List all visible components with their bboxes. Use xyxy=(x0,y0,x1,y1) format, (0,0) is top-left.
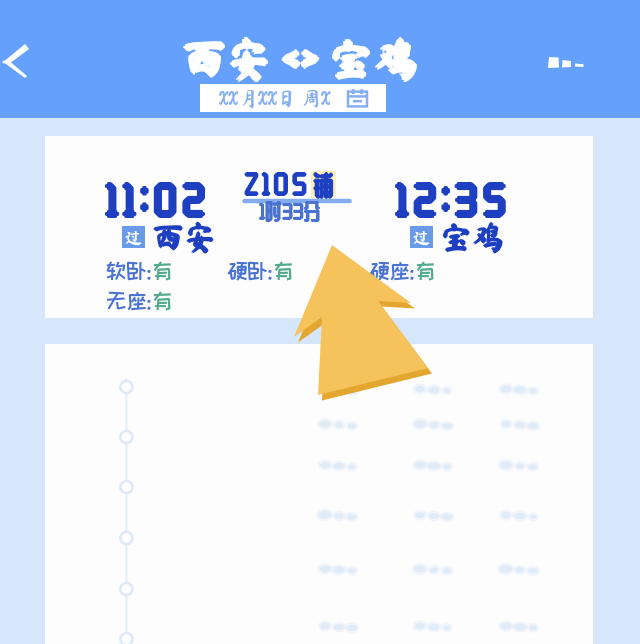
staticText: 西安 xyxy=(151,221,216,253)
staticText: 铺 xyxy=(314,171,335,198)
staticText: 西安 <> 宝鸡 xyxy=(182,36,419,80)
staticText: 铺 xyxy=(312,171,333,198)
staticText: 宝鸡 xyxy=(440,221,505,253)
staticText: 12:35 xyxy=(396,174,512,220)
staticText: 硬座: xyxy=(369,260,415,282)
staticText: 12:35 xyxy=(394,176,510,222)
staticText: 西安 xyxy=(153,221,218,253)
staticText: 宝鸡 xyxy=(440,222,505,254)
staticText: Z105 xyxy=(244,170,311,200)
staticText: 铺 xyxy=(313,170,334,197)
staticText: 宝鸡 xyxy=(439,221,504,253)
staticText: 1时33分 xyxy=(259,200,321,222)
staticText: 1时33分 xyxy=(260,200,322,222)
staticText: 12:35 xyxy=(398,176,514,222)
staticText: 1时33分 xyxy=(259,200,321,222)
staticText: Z105 xyxy=(245,169,312,199)
staticText: 西安 <> 宝鸡 xyxy=(184,36,421,80)
staticText: 12:35 xyxy=(396,176,512,222)
staticText: 西安 xyxy=(152,220,217,252)
staticText: 12:35 xyxy=(396,178,512,224)
staticText: XX月XX日 周X xyxy=(219,88,331,108)
staticText: 宝鸡 xyxy=(441,221,506,253)
staticText: 11:02 xyxy=(104,176,209,222)
button[interactable]: Back xyxy=(0,34,54,88)
staticText: 无座: xyxy=(106,290,152,312)
staticText: Z105 xyxy=(244,169,311,199)
staticText: 硬卧: xyxy=(227,260,273,282)
staticText: 11:02 xyxy=(106,174,211,220)
staticText: 有 xyxy=(415,260,436,282)
staticText: 11:02 xyxy=(106,176,211,222)
staticText: 1时33分 xyxy=(259,200,321,222)
staticText: 宝鸡 xyxy=(440,220,505,252)
staticText: 西安 xyxy=(152,221,217,253)
staticText: 1时33分 xyxy=(259,201,321,223)
staticText: 有 xyxy=(152,260,173,282)
staticText: 有 xyxy=(152,290,173,312)
staticText: 11:02 xyxy=(108,176,213,222)
staticText: 过 xyxy=(413,229,430,246)
staticText: 铺 xyxy=(313,171,334,198)
staticText: Z105 xyxy=(244,168,311,198)
staticText: 过 xyxy=(125,229,142,246)
staticText: 西安 <> 宝鸡 xyxy=(182,38,419,82)
staticText: 软卧: xyxy=(106,260,152,282)
button[interactable]: More options xyxy=(534,40,596,84)
staticText: 西安 xyxy=(152,222,217,254)
staticText: 西安 <> 宝鸡 xyxy=(180,36,417,80)
staticText: Z105 xyxy=(243,169,310,199)
staticText: 西安 <> 宝鸡 xyxy=(182,34,419,78)
button[interactable]: XX月XX日 周X xyxy=(200,84,386,112)
button[interactable]: 11:02 xyxy=(45,136,593,318)
staticText: 有 xyxy=(273,260,294,282)
staticText: 铺 xyxy=(313,172,334,199)
staticText: 11:02 xyxy=(106,178,211,224)
